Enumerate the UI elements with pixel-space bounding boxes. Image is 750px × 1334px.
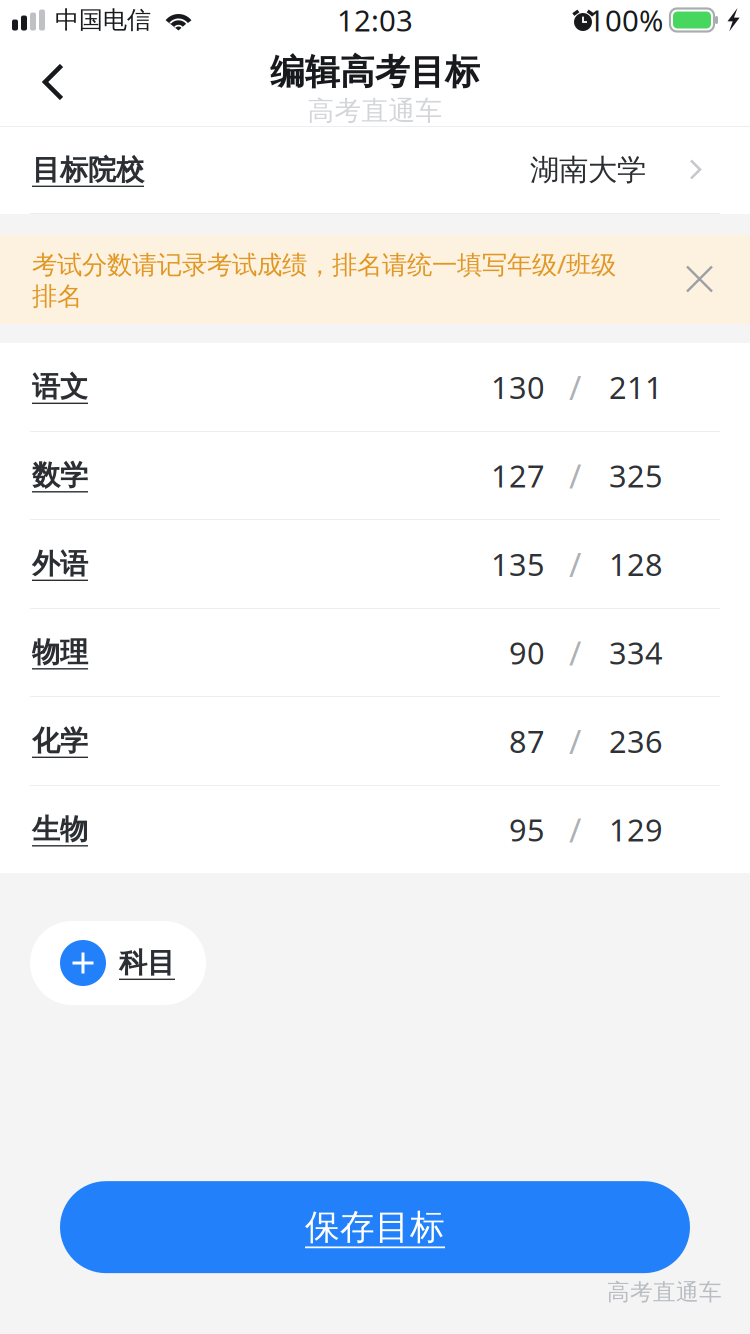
staticText: 数学 [32,458,88,493]
staticText: 100% [588,0,663,39]
button[interactable]: 数学 [0,432,750,519]
staticText: / [569,453,581,498]
staticText: 科目 [119,946,175,980]
button[interactable]: 化学 [0,697,750,785]
staticText: / [569,365,581,409]
staticText: 129 [609,809,663,850]
button[interactable]: 生物 [0,786,750,873]
staticText: 语文 [32,370,88,404]
staticText: 12:03 [337,0,413,39]
staticText: 湖南大学 [530,152,646,188]
button[interactable]: 科目 [30,921,206,1005]
staticText: 高考直通车 [307,94,442,127]
button[interactable]: 物理 [0,609,750,696]
staticText: 135 [491,544,545,584]
staticText: / [569,719,581,763]
button[interactable]: 目标院校 [0,127,750,213]
staticText: / [569,542,581,586]
staticText: / [569,630,581,675]
staticText: 127 [491,455,545,496]
staticText: 编辑高考目标 [270,51,480,93]
staticText: 236 [609,721,663,761]
staticText: 中国电信 [55,5,151,35]
staticText: / [569,807,581,852]
staticText: 高考直通车 [607,1278,722,1306]
staticText: 保存目标 [305,1206,445,1248]
staticText: 目标院校 [32,153,144,187]
staticText: 化学 [32,724,88,758]
staticText: 87 [509,721,545,761]
staticText: 考试分数请记录考试成绩，排名请统一填写年级/班级排名 [32,247,616,312]
button[interactable]: Dismiss [661,240,739,318]
staticText: 95 [509,809,545,850]
staticText: 90 [509,632,545,673]
staticText: 物理 [32,635,88,670]
button[interactable]: 语文 [0,343,750,431]
button[interactable]: Back [0,40,108,126]
staticText: 外语 [32,547,88,581]
staticText: 334 [609,632,663,673]
button[interactable]: 外语 [0,520,750,608]
staticText: 211 [609,367,663,407]
staticText: 130 [491,367,545,407]
staticText: 325 [609,455,663,496]
staticText: 生物 [32,812,88,847]
staticText: 128 [609,544,663,584]
button[interactable]: 保存目标 [60,1181,690,1273]
